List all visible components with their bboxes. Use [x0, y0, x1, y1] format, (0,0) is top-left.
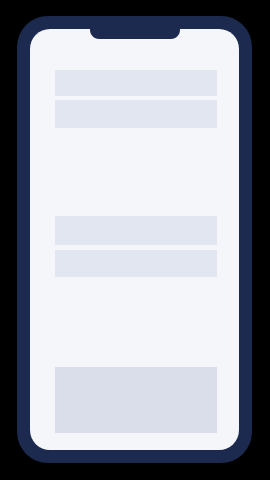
button[interactable]: Smartphone illustration with loading pla…	[0, 0, 270, 480]
